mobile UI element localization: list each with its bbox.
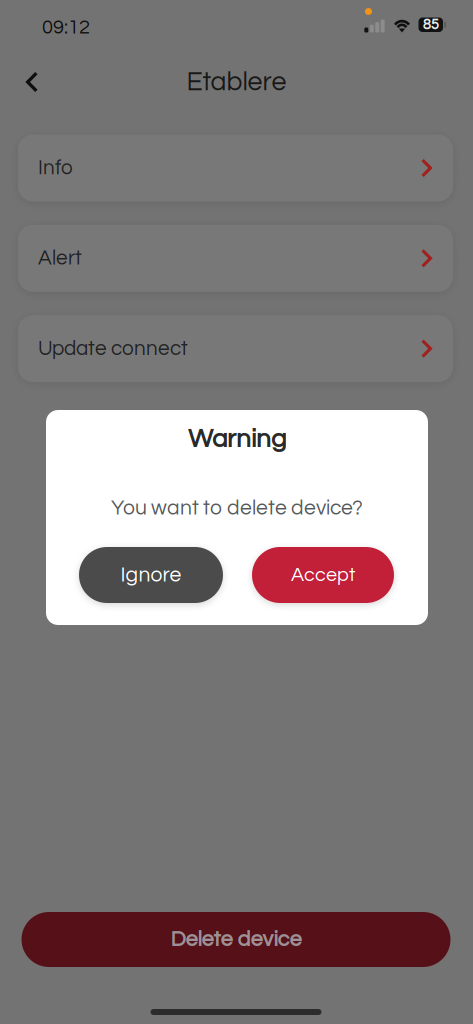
staticText: Alert	[38, 248, 82, 269]
staticText: Ignore	[120, 564, 181, 586]
button[interactable]: Alert	[18, 225, 453, 292]
staticText: Info	[38, 157, 73, 179]
staticText: Accept	[291, 565, 355, 585]
button[interactable]: Accept	[252, 547, 394, 603]
button[interactable]: Update connect	[18, 315, 453, 382]
button[interactable]: Back	[9, 59, 55, 105]
staticText: 09:12	[42, 17, 90, 38]
staticText: Warning	[188, 426, 286, 452]
button[interactable]: Delete device	[21, 912, 450, 967]
button[interactable]: Info	[18, 134, 453, 201]
staticText: Delete device	[170, 928, 301, 951]
staticText: Update connect	[38, 338, 188, 359]
button[interactable]: Ignore	[79, 547, 223, 603]
staticText: 85	[423, 17, 439, 32]
staticText: Etablere	[186, 68, 286, 96]
staticText: You want to delete device?	[111, 497, 363, 519]
